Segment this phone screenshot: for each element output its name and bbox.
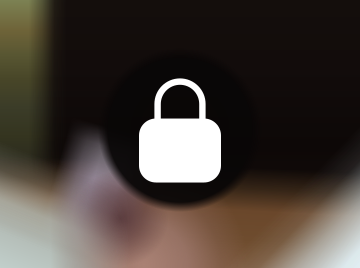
button[interactable]: Locked [0,0,360,268]
